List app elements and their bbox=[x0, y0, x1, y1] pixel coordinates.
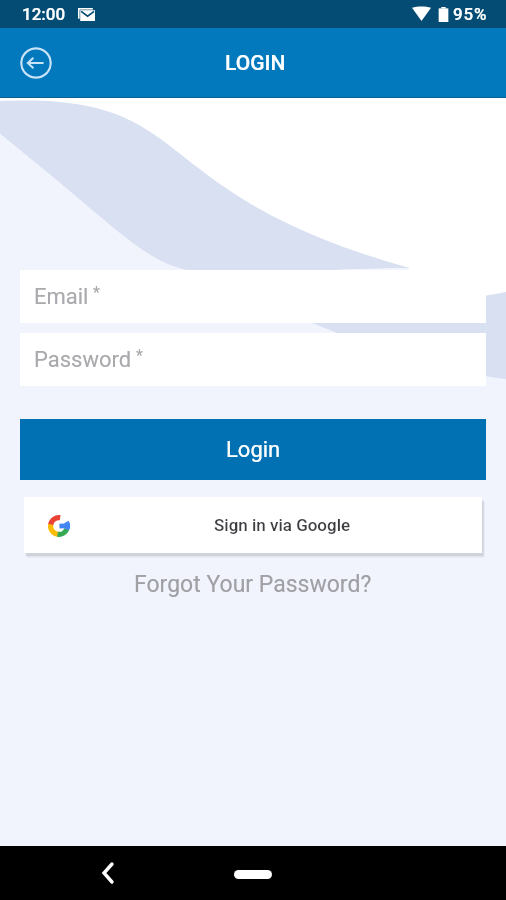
button[interactable]: Forgot Your Password? bbox=[134, 571, 372, 598]
staticText: Sign in via Google bbox=[214, 515, 351, 535]
staticText: Email bbox=[34, 284, 89, 310]
button[interactable]: Back bbox=[20, 47, 52, 79]
staticText: * bbox=[136, 346, 143, 365]
staticText: LOGIN bbox=[225, 51, 286, 76]
button[interactable]: Email bbox=[20, 270, 486, 323]
button[interactable]: Password bbox=[20, 333, 486, 386]
staticText: Login bbox=[226, 437, 281, 463]
button[interactable]: Sign in via Google bbox=[24, 497, 482, 553]
staticText: 12:00 bbox=[22, 4, 66, 24]
button[interactable]: Home bbox=[234, 870, 272, 879]
staticText: * bbox=[93, 283, 100, 302]
button[interactable]: Login bbox=[20, 419, 486, 480]
button[interactable]: Back bbox=[96, 861, 120, 885]
staticText: 95% bbox=[453, 4, 488, 24]
staticText: Password bbox=[34, 347, 132, 373]
